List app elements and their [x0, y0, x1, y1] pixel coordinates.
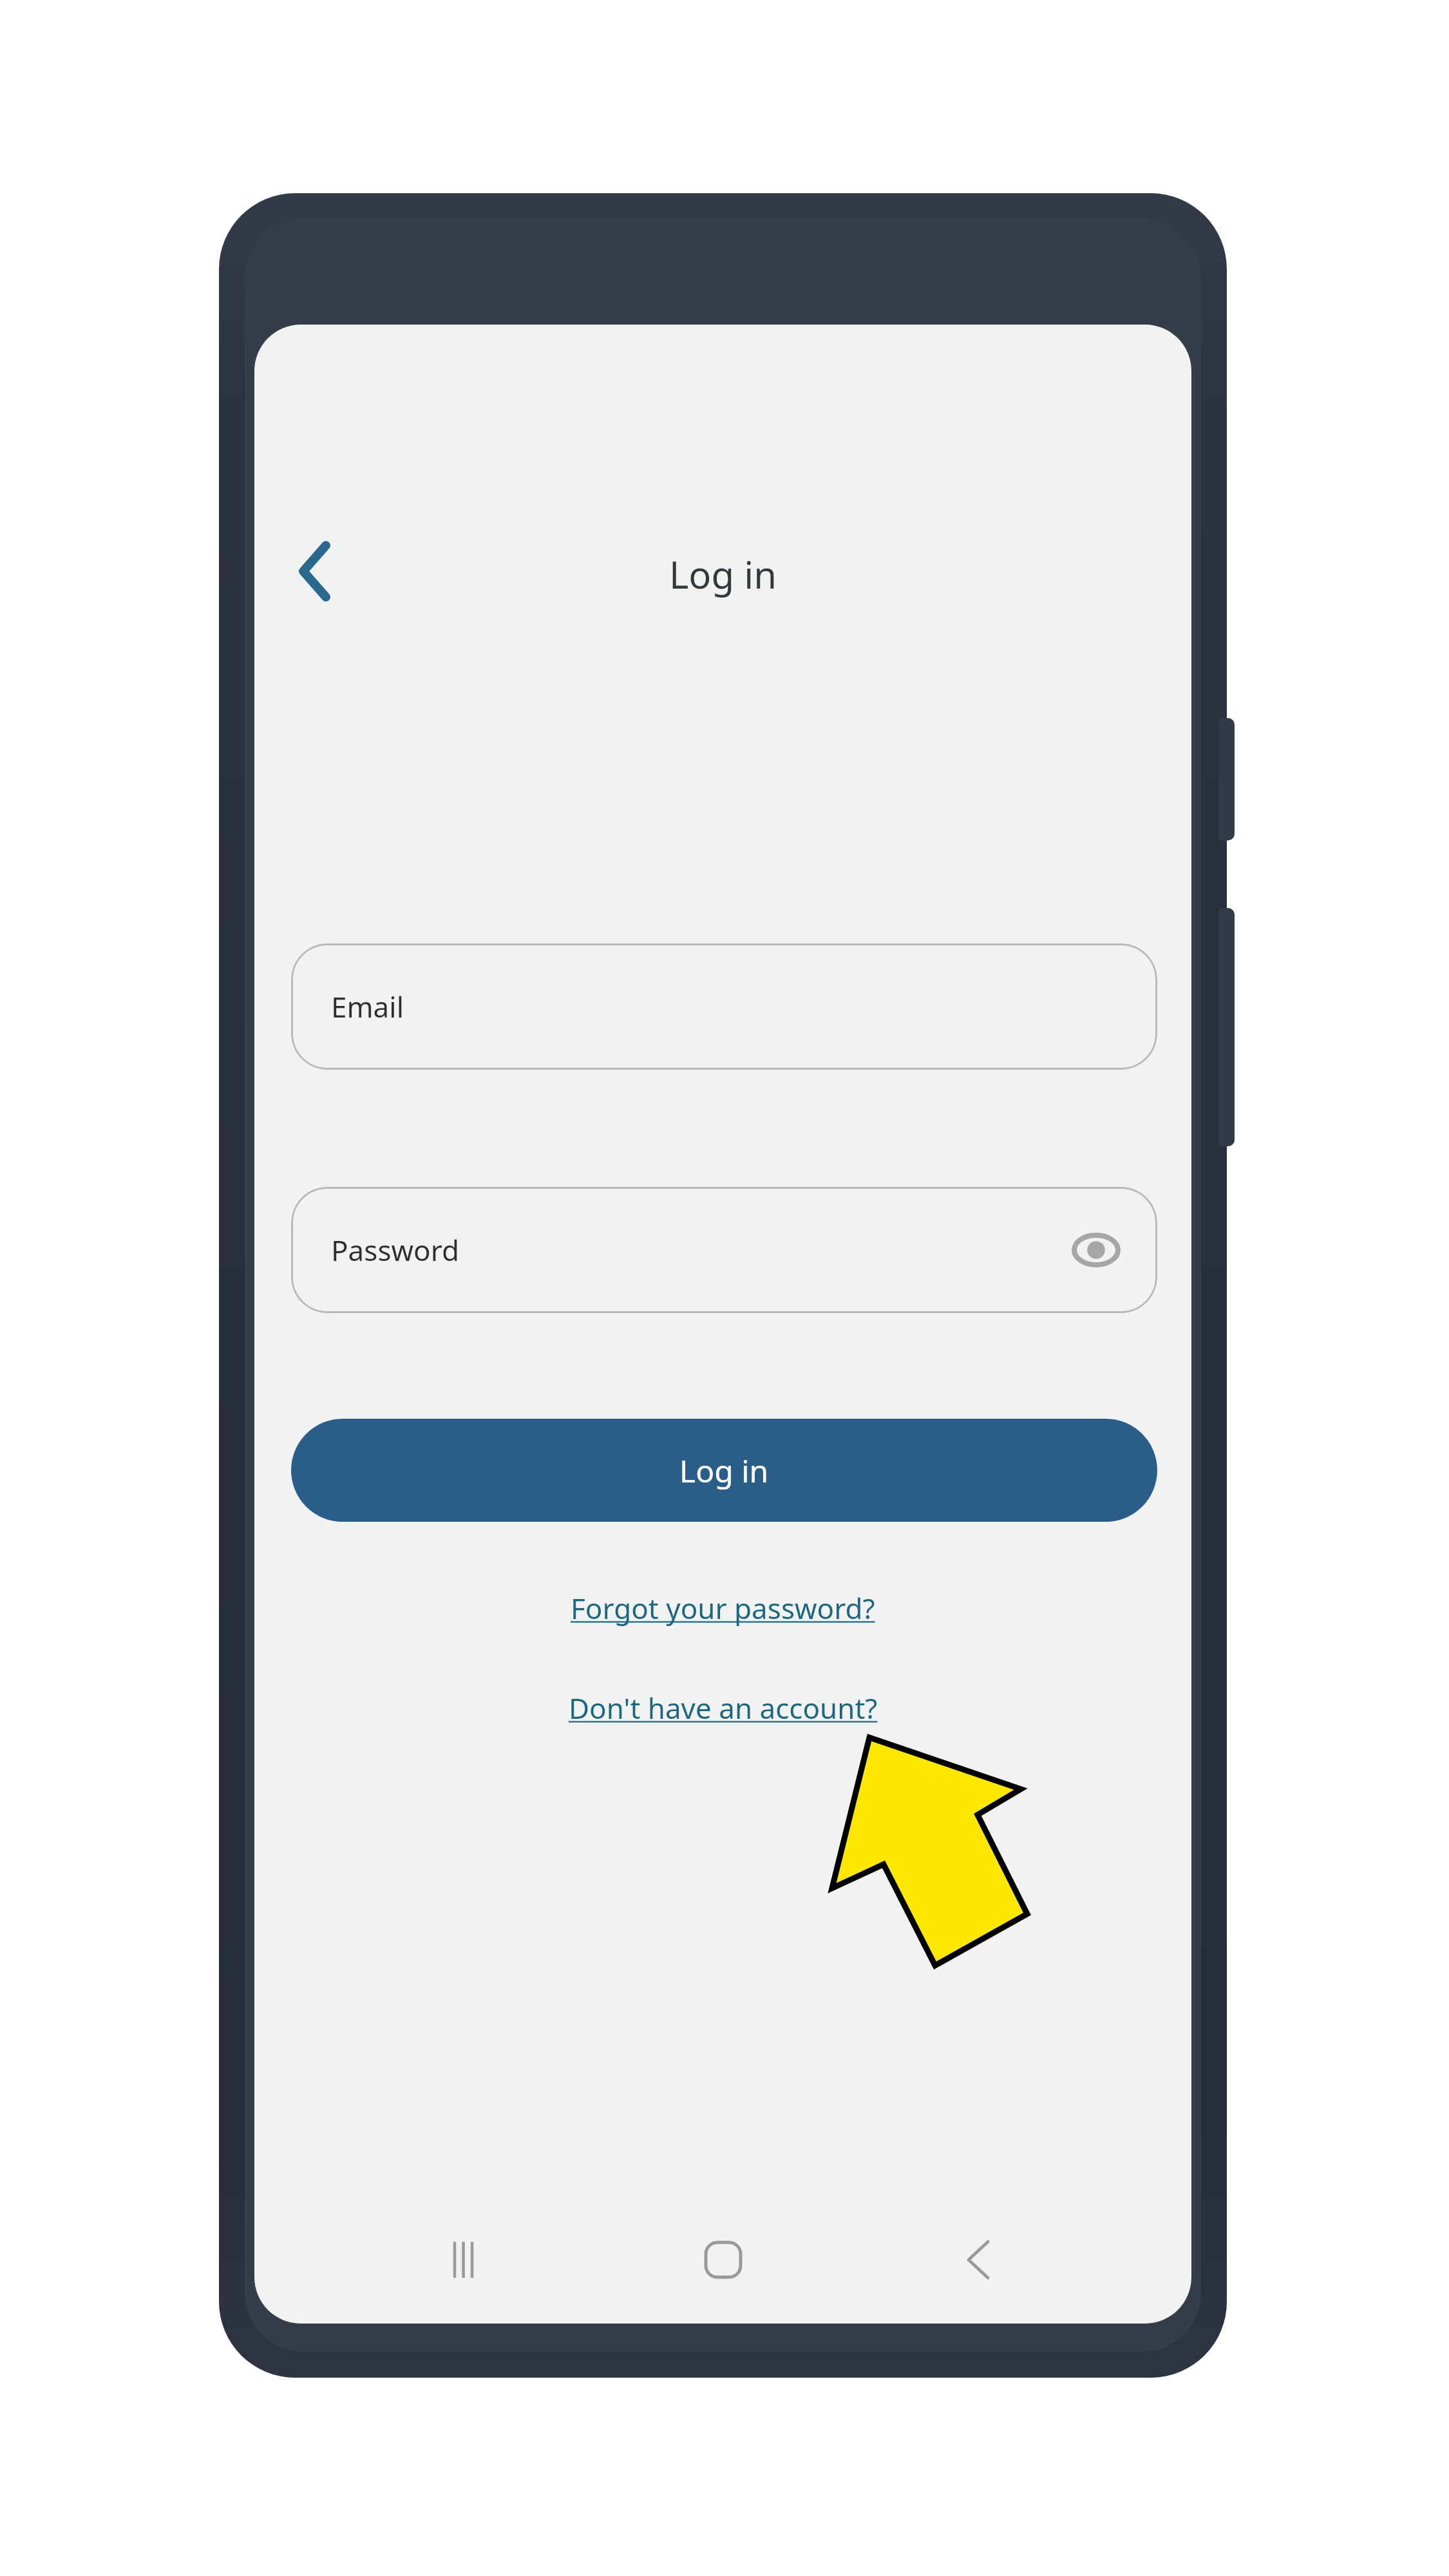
staticText: Log in [679, 1450, 769, 1492]
staticText: Forgot your password? [571, 1589, 875, 1627]
staticText: Email [331, 987, 404, 1026]
button[interactable]: Back [280, 536, 351, 607]
button[interactable]: Email [291, 943, 1157, 1070]
staticText: Log in [254, 549, 1191, 600]
button[interactable]: Forgot your password? [560, 1581, 885, 1635]
staticText: Password [331, 1231, 460, 1269]
button[interactable]: Log in [291, 1419, 1157, 1522]
staticText: Don't have an account? [569, 1689, 878, 1727]
button[interactable]: Recents [426, 2218, 509, 2302]
button[interactable]: Password [291, 1187, 1157, 1313]
button[interactable]: Back [936, 2218, 1020, 2302]
button[interactable]: Don't have an account? [558, 1681, 888, 1735]
button[interactable]: Show password [1061, 1215, 1132, 1285]
button[interactable]: Home [681, 2218, 765, 2302]
